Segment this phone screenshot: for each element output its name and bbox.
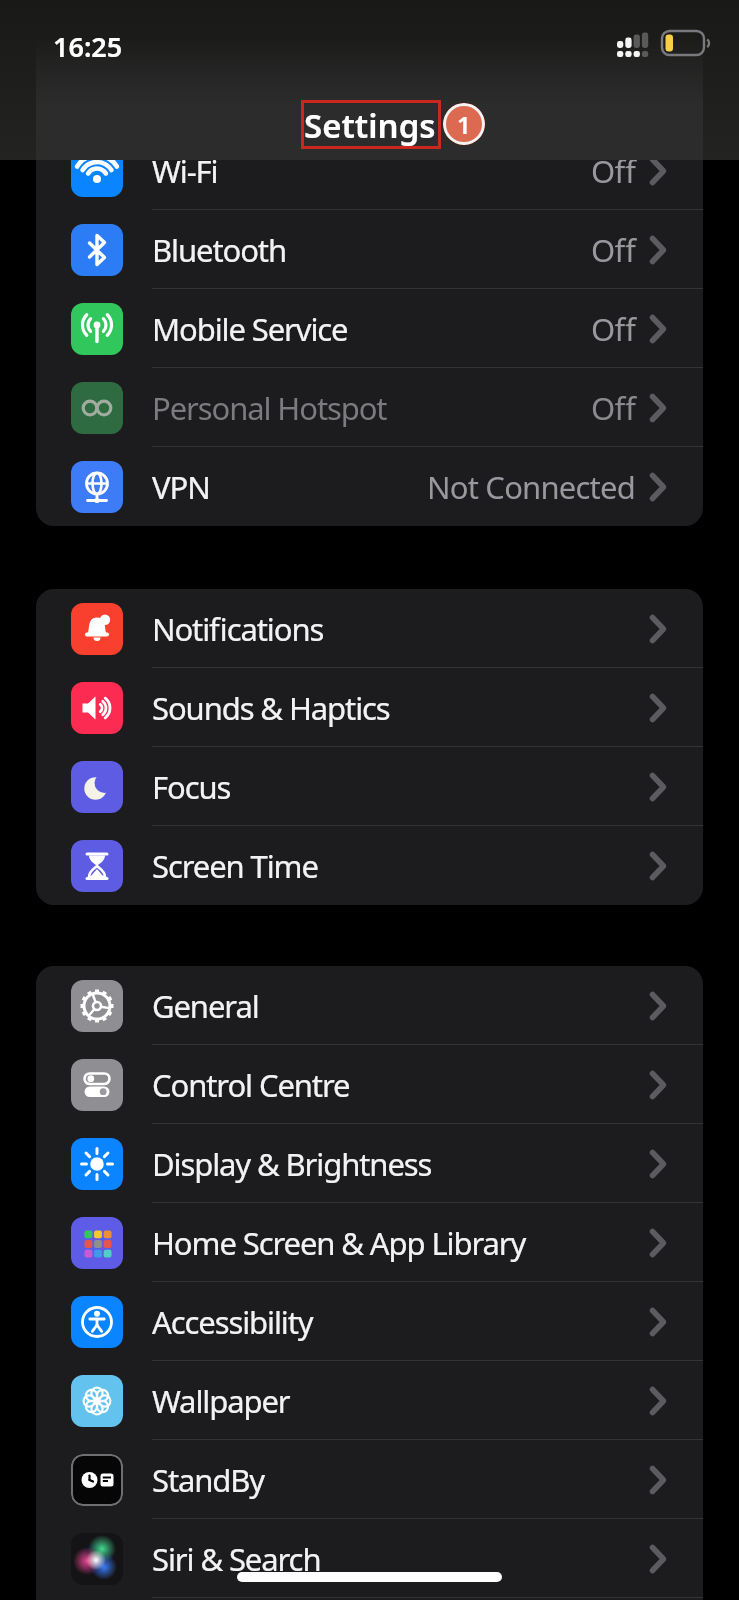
staticText: 16:25 <box>53 28 123 65</box>
staticText: Focus <box>152 766 231 808</box>
staticText: Sounds & Haptics <box>152 687 390 729</box>
staticText: Off <box>591 387 635 429</box>
staticText: Bluetooth <box>152 229 286 271</box>
button[interactable]: Focus <box>36 747 703 826</box>
button[interactable]: Accessibility <box>36 1282 703 1361</box>
staticText: Display & Brightness <box>152 1143 432 1185</box>
button[interactable]: StandBy <box>36 1440 703 1519</box>
staticText: Personal Hotspot <box>152 387 387 429</box>
button[interactable]: Control Centre <box>36 1045 703 1124</box>
staticText: Siri & Search <box>152 1538 321 1580</box>
button[interactable]: Notifications <box>36 589 703 668</box>
staticText: Settings <box>304 103 436 148</box>
staticText: Home Screen & App Library <box>152 1222 526 1264</box>
staticText: Control Centre <box>152 1064 350 1106</box>
staticText: Not Connected <box>427 466 635 508</box>
button[interactable]: Wi-Fi <box>36 131 703 210</box>
staticText: Off <box>591 150 635 192</box>
staticText: VPN <box>152 466 210 508</box>
staticText: Off <box>591 229 635 271</box>
staticText: Wi-Fi <box>152 150 218 192</box>
button[interactable]: 1 <box>443 103 485 145</box>
staticText: Screen Time <box>152 845 318 887</box>
button[interactable]: General <box>36 966 703 1045</box>
button[interactable]: Home Screen & App Library <box>36 1203 703 1282</box>
staticText: 1 <box>457 108 471 141</box>
button[interactable]: Mobile Service <box>36 289 703 368</box>
staticText: Notifications <box>152 608 324 650</box>
staticText: Accessibility <box>152 1301 313 1343</box>
button[interactable]: Bluetooth <box>36 210 703 289</box>
staticText: General <box>152 985 259 1027</box>
button[interactable]: Sounds & Haptics <box>36 668 703 747</box>
staticText: Off <box>591 308 635 350</box>
staticText: StandBy <box>152 1459 265 1501</box>
staticText: Wallpaper <box>152 1380 290 1422</box>
button[interactable]: VPN <box>36 447 703 526</box>
button[interactable]: Display & Brightness <box>36 1124 703 1203</box>
button[interactable]: Personal Hotspot <box>36 368 703 447</box>
button[interactable]: Wallpaper <box>36 1361 703 1440</box>
staticText: Mobile Service <box>152 308 348 350</box>
button[interactable]: Siri & Search <box>36 1519 703 1598</box>
button[interactable]: Screen Time <box>36 826 703 905</box>
